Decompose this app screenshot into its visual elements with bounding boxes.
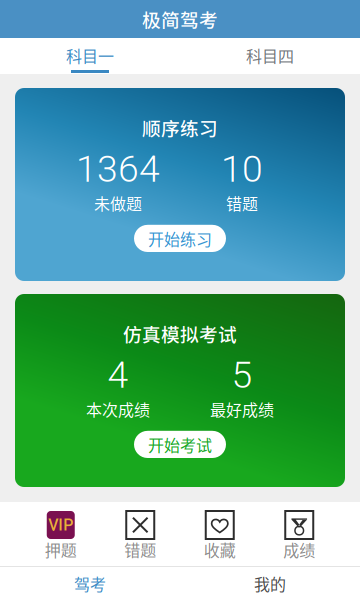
button[interactable]: 错题 (100, 502, 180, 566)
staticText: 成绩 (283, 538, 315, 561)
staticText: 错题 (124, 538, 156, 561)
staticText: 极简驾考 (142, 5, 218, 32)
button[interactable]: 开始练习 (134, 225, 226, 252)
button[interactable]: 科目一 (0, 38, 180, 74)
staticText: 本次成绩 (86, 397, 150, 421)
staticText: 收藏 (204, 538, 236, 561)
staticText: 未做题 (94, 191, 142, 215)
staticText: 仿真模拟考试 (123, 320, 237, 347)
staticText: 科目一 (66, 44, 114, 67)
button[interactable]: 科目四 (180, 38, 360, 74)
staticText: 4 (107, 353, 128, 397)
staticText: 驾考 (74, 572, 106, 595)
staticText: 押题 (45, 538, 77, 561)
staticText: 最好成绩 (210, 397, 274, 421)
staticText: 顺序练习 (142, 114, 218, 141)
staticText: VIP (48, 516, 73, 534)
staticText: 开始练习 (148, 227, 212, 250)
staticText: 错题 (226, 191, 258, 215)
staticText: 10 (221, 147, 263, 191)
button[interactable]: 我的 (180, 567, 360, 600)
button[interactable]: 收藏 (180, 502, 259, 566)
staticText: 开始考试 (148, 433, 212, 456)
button[interactable]: VIP (21, 502, 100, 566)
staticText: 5 (231, 353, 252, 397)
button[interactable]: 开始考试 (134, 431, 226, 458)
button[interactable]: 驾考 (0, 567, 180, 600)
staticText: 科目四 (246, 44, 294, 67)
button[interactable]: 成绩 (259, 502, 339, 566)
staticText: 1364 (76, 147, 160, 191)
staticText: 我的 (254, 572, 286, 595)
